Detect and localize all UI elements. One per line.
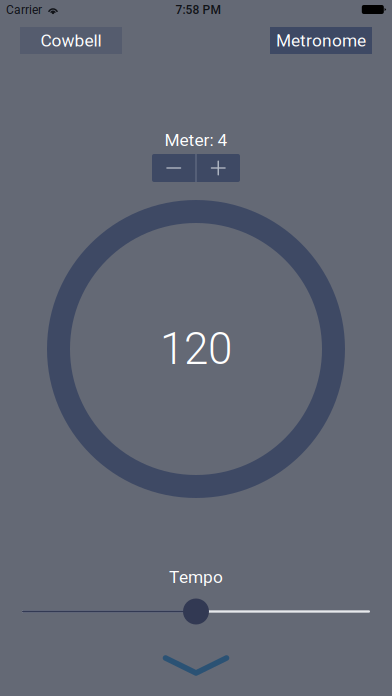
staticText: Cowbell xyxy=(40,30,101,51)
button[interactable]: Cowbell xyxy=(20,27,122,54)
button[interactable]: Metronome xyxy=(270,27,372,54)
button[interactable]: Increase meter xyxy=(196,154,240,182)
staticText: Carrier xyxy=(6,3,42,17)
staticText: 120 xyxy=(160,323,232,375)
button[interactable]: Collapse xyxy=(162,655,229,676)
staticText: Metronome xyxy=(276,30,366,51)
button[interactable]: Decrease meter xyxy=(152,154,195,182)
staticText: Tempo xyxy=(169,567,223,587)
staticText: 7:58 PM xyxy=(175,3,220,17)
staticText: Meter: 4 xyxy=(164,130,227,150)
